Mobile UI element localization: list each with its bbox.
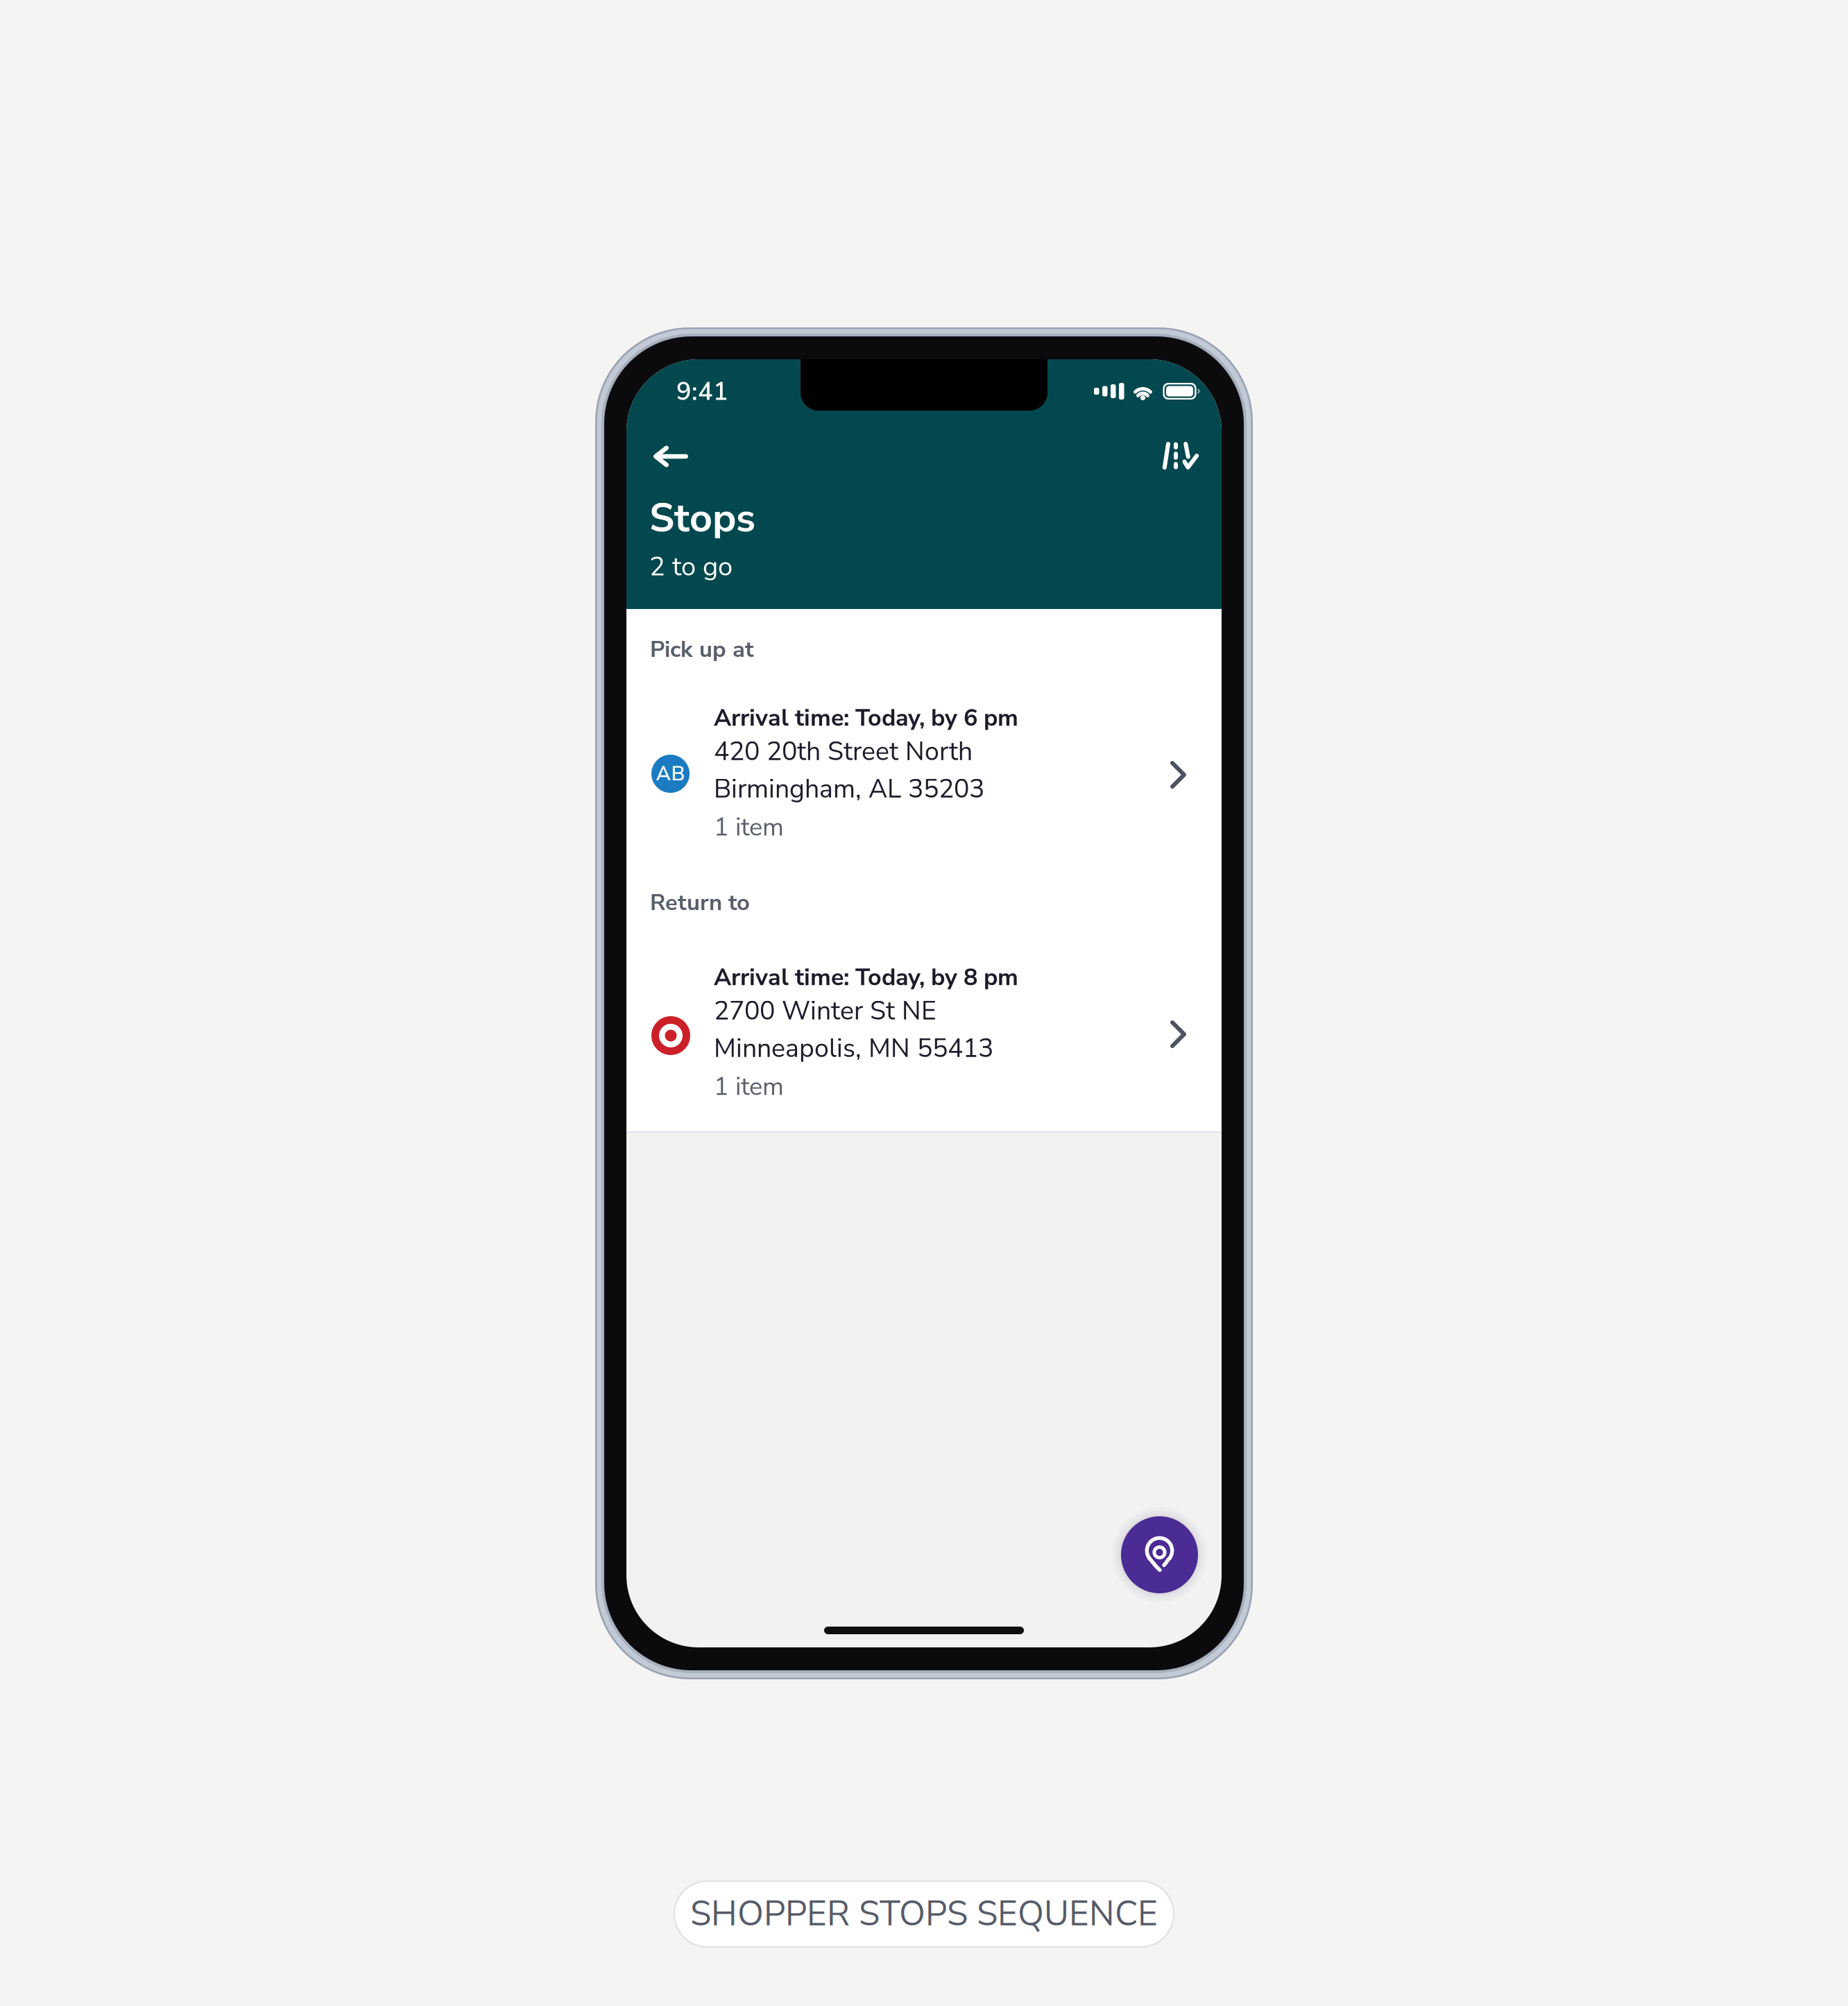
staticText: Arrival time: Today, by 6 pm bbox=[714, 702, 1018, 734]
staticText: Birmingham, AL 35203 bbox=[714, 771, 984, 807]
staticText: Minneapolis, MN 55413 bbox=[714, 1031, 993, 1066]
button[interactable]: SHOPPER STOPS SEQUENCE bbox=[674, 1881, 1174, 1947]
staticText: 420 20th Street North bbox=[714, 734, 973, 769]
button[interactable]: Show map bbox=[1112, 1507, 1207, 1602]
staticText: 9:41 bbox=[676, 375, 728, 409]
button[interactable]: Back bbox=[641, 430, 701, 483]
staticText: Arrival time: Today, by 8 pm bbox=[714, 961, 1018, 994]
staticText: 1 item bbox=[714, 810, 784, 844]
button[interactable]: AB bbox=[626, 697, 1222, 871]
button[interactable]: Reorder stops bbox=[1151, 429, 1210, 482]
staticText: Pick up at bbox=[650, 634, 754, 665]
staticText: AB bbox=[656, 760, 685, 788]
button[interactable]: Arrival time: Today, by 8 pm bbox=[626, 957, 1222, 1130]
staticText: 1 item bbox=[714, 1070, 784, 1104]
staticText: 2 to go bbox=[649, 549, 733, 585]
staticText: 2700 Winter St NE bbox=[714, 993, 936, 1029]
staticText: Return to bbox=[650, 887, 750, 918]
staticText: SHOPPER STOPS SEQUENCE bbox=[690, 1891, 1158, 1937]
staticText: Stops bbox=[649, 491, 755, 545]
